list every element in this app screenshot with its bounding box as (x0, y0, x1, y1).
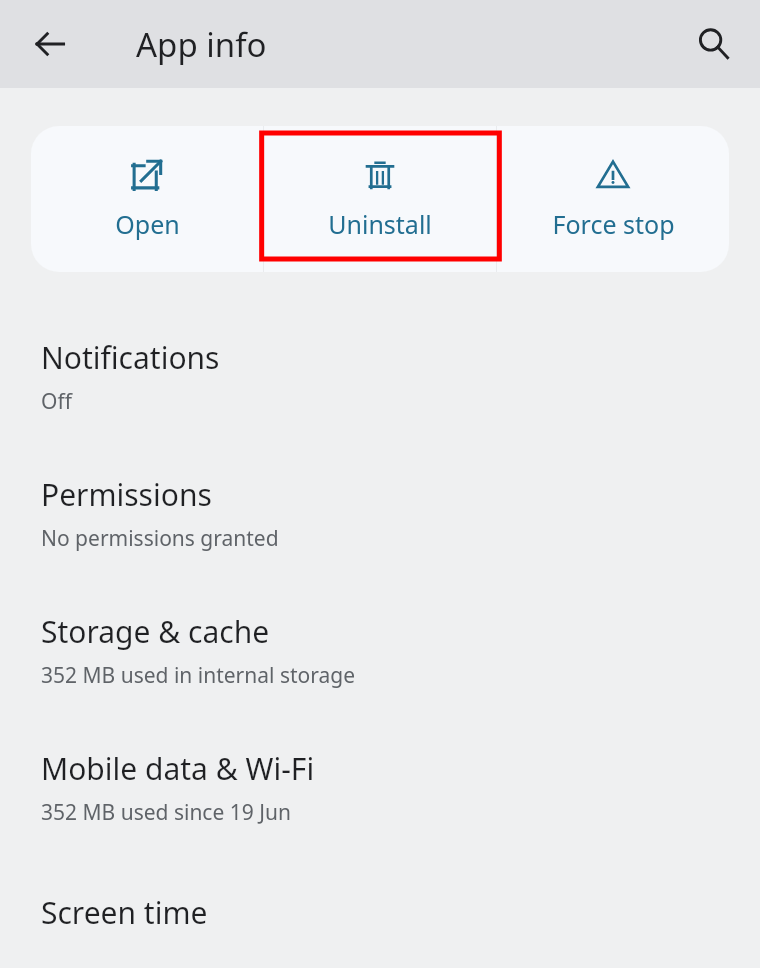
staticText: Off (41, 387, 72, 416)
button[interactable]: Mobile data & Wi-Fi (0, 719, 760, 856)
button[interactable]: Screen time (0, 856, 760, 968)
button[interactable]: Force stop (497, 126, 729, 272)
staticText: Screen time (41, 892, 208, 933)
staticText: Mobile data & Wi-Fi (41, 748, 315, 789)
staticText: Open (115, 207, 180, 241)
staticText: Force stop (552, 207, 675, 241)
staticText: Notifications (41, 337, 220, 378)
button[interactable]: Search (682, 12, 746, 76)
staticText: App info (136, 22, 267, 67)
button[interactable]: Back (18, 12, 82, 76)
staticText: Uninstall (328, 207, 432, 241)
staticText: 352 MB used since 19 Jun (41, 798, 291, 827)
button[interactable]: Notifications (0, 308, 760, 445)
staticText: Storage & cache (41, 611, 270, 652)
button[interactable]: Open (31, 126, 263, 272)
button[interactable]: Permissions (0, 445, 760, 582)
button[interactable]: Uninstall (264, 126, 496, 272)
button[interactable]: Storage & cache (0, 582, 760, 719)
staticText: No permissions granted (41, 524, 279, 553)
staticText: 352 MB used in internal storage (41, 661, 356, 690)
staticText: Permissions (41, 474, 212, 515)
